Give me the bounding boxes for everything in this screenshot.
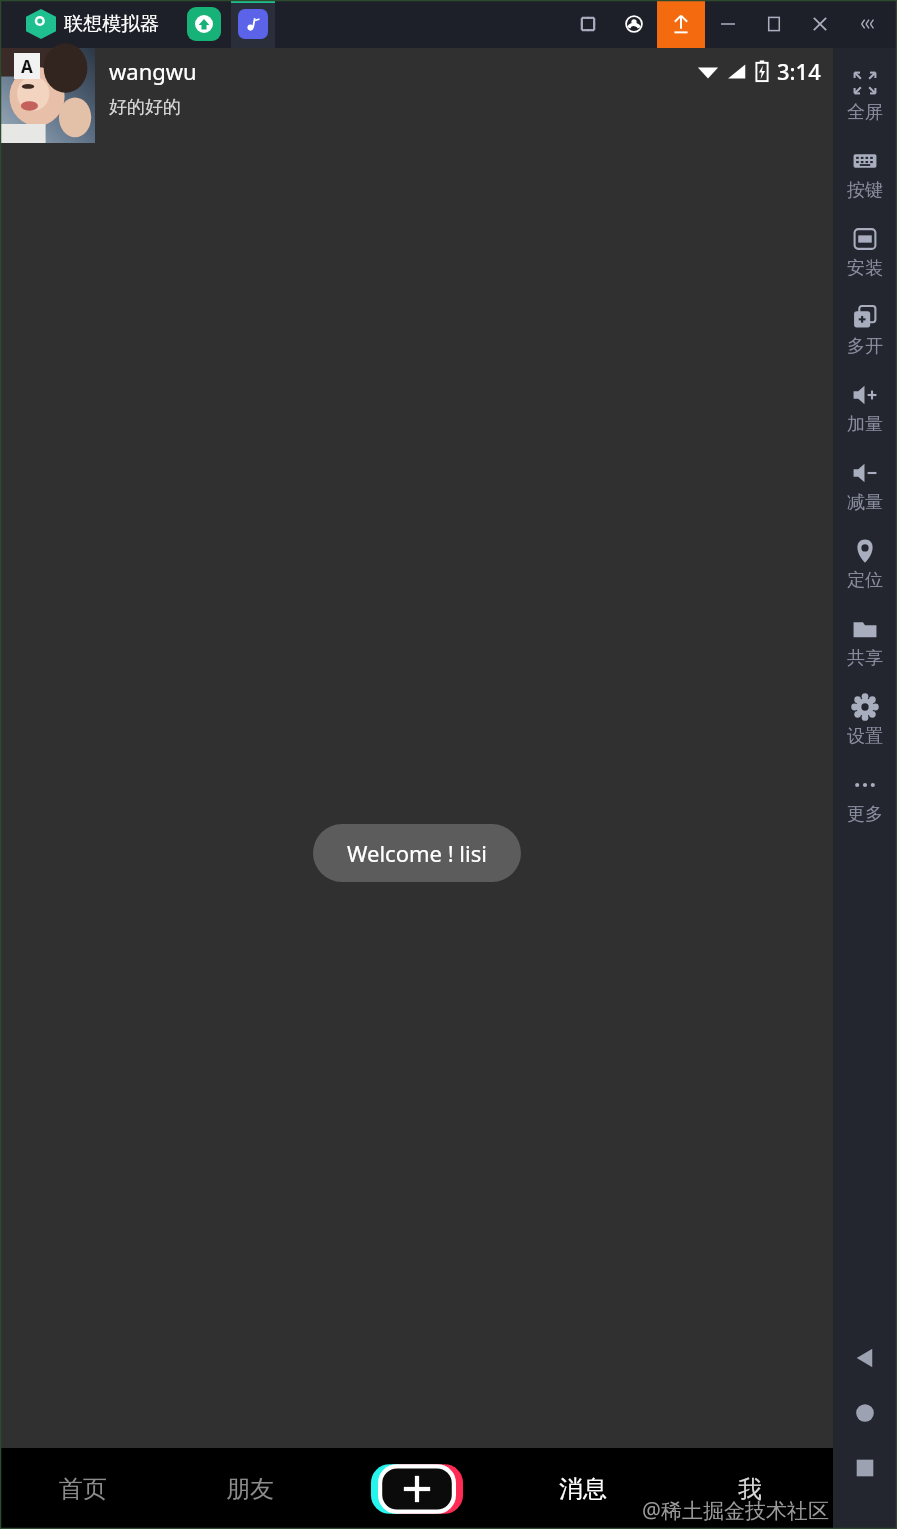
button[interactable]: 共享 bbox=[833, 604, 897, 682]
button[interactable]: Close bbox=[797, 0, 843, 48]
button[interactable]: App tab bbox=[231, 0, 275, 48]
staticText: 定位 bbox=[847, 569, 883, 592]
button[interactable]: Home tab bbox=[187, 7, 221, 41]
button[interactable]: 消息 bbox=[523, 1448, 643, 1529]
button[interactable]: 更多 bbox=[833, 760, 897, 838]
staticText: A bbox=[21, 55, 33, 78]
button[interactable]: 定位 bbox=[833, 526, 897, 604]
button[interactable]: 朋友 bbox=[190, 1448, 310, 1529]
staticText: 更多 bbox=[847, 803, 883, 826]
staticText: 我 bbox=[738, 1474, 762, 1504]
button[interactable]: Back bbox=[833, 1330, 897, 1385]
button[interactable]: 首页 bbox=[23, 1448, 143, 1529]
staticText: 全屏 bbox=[847, 101, 883, 124]
button[interactable]: 按键 bbox=[833, 136, 897, 214]
staticText: Welcome ! lisi bbox=[347, 838, 487, 868]
staticText: wangwu bbox=[109, 56, 197, 86]
staticText: 安装 bbox=[847, 257, 883, 280]
staticText: 设置 bbox=[847, 725, 883, 748]
staticText: 加量 bbox=[847, 413, 883, 436]
button[interactable]: Maximize bbox=[751, 0, 797, 48]
staticText: 多开 bbox=[847, 335, 883, 358]
staticText: 共享 bbox=[847, 647, 883, 670]
button[interactable]: Home bbox=[833, 1385, 897, 1440]
staticText: 消息 bbox=[559, 1474, 607, 1504]
staticText: 联想模拟器 bbox=[64, 12, 159, 36]
button[interactable]: Collapse sidebar bbox=[843, 0, 889, 48]
button[interactable]: 全屏 bbox=[833, 58, 897, 136]
staticText: 按键 bbox=[847, 179, 883, 202]
staticText: 首页 bbox=[59, 1474, 107, 1504]
button[interactable]: Upload bbox=[657, 0, 705, 48]
button[interactable]: 我 bbox=[690, 1448, 810, 1529]
staticText: 好的好的 bbox=[109, 96, 181, 119]
button[interactable]: 安装 bbox=[833, 214, 897, 292]
button[interactable]: Screenshot bbox=[565, 0, 611, 48]
button[interactable]: Account bbox=[611, 0, 657, 48]
button[interactable]: 减量 bbox=[833, 448, 897, 526]
staticText: 3:14 bbox=[777, 56, 821, 86]
button[interactable]: Minimize bbox=[705, 0, 751, 48]
staticText: 减量 bbox=[847, 491, 883, 514]
staticText: @稀土掘金技术社区 bbox=[642, 1496, 829, 1525]
button[interactable]: Create bbox=[357, 1448, 477, 1529]
staticText: 朋友 bbox=[226, 1474, 274, 1504]
button[interactable]: 多开 bbox=[833, 292, 897, 370]
button[interactable]: Recents bbox=[833, 1440, 897, 1495]
button[interactable]: 加量 bbox=[833, 370, 897, 448]
button[interactable]: 设置 bbox=[833, 682, 897, 760]
